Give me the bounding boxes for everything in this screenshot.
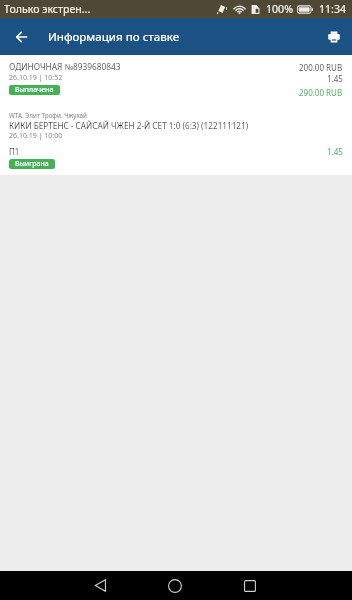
staticText: 200.00 RUB — [299, 62, 343, 73]
button[interactable]: Back — [84, 571, 116, 600]
staticText: КИКИ БЕРТЕНС - САЙСАЙ ЧЖЕН 2-Й СЕТ 1:0 (… — [9, 120, 249, 131]
staticText: Выплачена — [15, 85, 54, 95]
button[interactable]: Выплачена — [9, 85, 60, 95]
staticText: WTA. Элит Трофи. Чжухай — [9, 111, 87, 120]
button[interactable]: Recents — [234, 571, 266, 600]
staticText: Выиграна — [15, 159, 49, 169]
staticText: 100% — [266, 2, 293, 16]
staticText: 1.45 — [327, 73, 343, 84]
button[interactable]: Выиграна — [9, 159, 55, 169]
staticText: Только экстрен... — [4, 2, 91, 16]
staticText: 290.00 RUB — [299, 87, 343, 98]
staticText: 26.10.19 | 10:00 — [9, 131, 63, 141]
staticText: ОДИНОЧНАЯ №8939680843 — [9, 61, 121, 72]
staticText: П1 — [9, 146, 20, 157]
staticText: 1.45 — [327, 146, 343, 157]
button[interactable]: Print — [316, 19, 352, 55]
button[interactable]: ОДИНОЧНАЯ №8939680843 — [0, 55, 352, 100]
staticText: 11:34 — [319, 2, 347, 16]
staticText: 26.10.19 | 10:52 — [9, 73, 63, 83]
button[interactable]: Home — [159, 571, 191, 600]
button[interactable]: Back — [0, 18, 42, 55]
button[interactable]: WTA. Элит Трофи. Чжухай — [0, 108, 352, 175]
staticText: Информация по ставке — [48, 29, 180, 45]
